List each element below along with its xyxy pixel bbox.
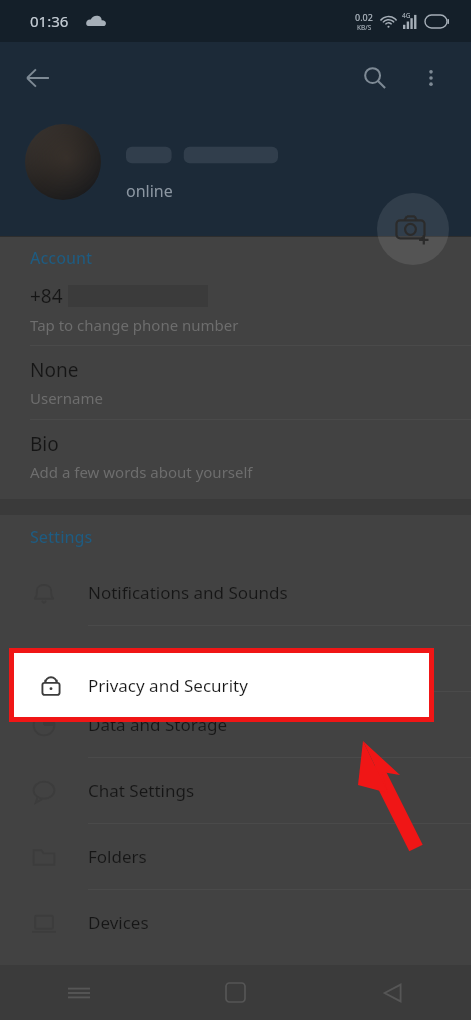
- button[interactable]: None: [0, 346, 471, 419]
- staticText: 01:36: [30, 11, 69, 31]
- staticText: Privacy and Security: [88, 674, 248, 697]
- button[interactable]: Search: [351, 54, 399, 102]
- button[interactable]: Notifications and Sounds: [0, 560, 471, 625]
- staticText: Account: [30, 247, 93, 269]
- staticText: Notifications and Sounds: [88, 581, 288, 604]
- button[interactable]: Profile photo: [25, 124, 101, 200]
- staticText: Data and Storage: [88, 713, 227, 736]
- staticText: +84: [30, 283, 63, 309]
- staticText: Bio: [30, 431, 59, 457]
- staticText: None: [30, 357, 79, 383]
- staticText: Add a few words about yourself: [30, 462, 253, 482]
- staticText: Devices: [88, 911, 149, 934]
- button[interactable]: More options: [407, 54, 455, 102]
- staticText: Tap to change phone number: [30, 315, 239, 335]
- button[interactable]: Privacy and Security: [0, 626, 471, 691]
- button[interactable]: Bio: [0, 420, 471, 493]
- staticText: Settings: [30, 526, 93, 548]
- staticText: 4G: [402, 11, 411, 20]
- button[interactable]: Chat Settings: [0, 758, 471, 823]
- staticText: Username: [30, 388, 103, 408]
- staticText: Privacy and Security: [88, 647, 248, 670]
- button[interactable]: Privacy and Security: [14, 653, 429, 717]
- staticText: KB/S: [357, 23, 372, 32]
- staticText: online: [126, 180, 173, 202]
- button[interactable]: Data and Storage: [0, 692, 471, 757]
- button[interactable]: +84: [0, 281, 471, 345]
- staticText: 0.02: [355, 11, 373, 23]
- staticText: Chat Settings: [88, 779, 195, 802]
- button[interactable]: Back: [14, 54, 62, 102]
- button[interactable]: Change profile photo: [377, 193, 449, 265]
- staticText: Folders: [88, 845, 147, 868]
- button[interactable]: Folders: [0, 824, 471, 889]
